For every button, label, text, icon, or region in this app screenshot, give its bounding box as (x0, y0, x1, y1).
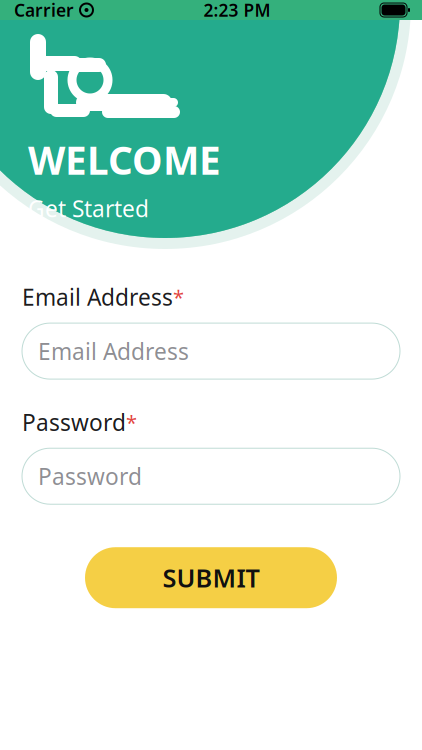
staticText: Password (38, 461, 142, 491)
staticText: SUBMIT (162, 561, 259, 594)
staticText (74, 0, 79, 21)
staticText: 2:23 PM (203, 0, 270, 21)
button[interactable]: SUBMIT (85, 547, 337, 608)
staticText: Email Address (38, 336, 189, 366)
staticText: * (126, 409, 137, 435)
staticText: Email Address (22, 282, 173, 312)
staticText: Carrier (14, 0, 74, 21)
button[interactable]: Password (22, 448, 400, 504)
staticText: Get Started (28, 193, 149, 223)
staticText: Password (22, 407, 126, 437)
staticText: WELCOME (28, 134, 221, 185)
button[interactable]: Email Address (22, 323, 400, 379)
staticText: * (173, 284, 184, 310)
